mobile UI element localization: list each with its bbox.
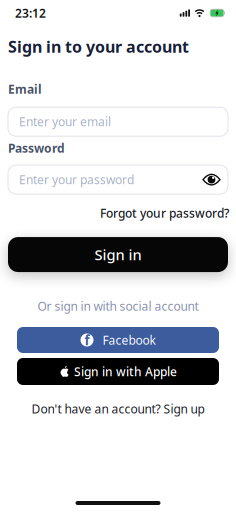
staticText: Or sign in with social account <box>37 298 198 314</box>
button[interactable]: Enter your password <box>8 165 228 194</box>
button[interactable]: Forgot your password? <box>100 205 229 221</box>
staticText: Forgot your password? <box>100 205 229 221</box>
staticText: 23:12 <box>15 5 46 21</box>
staticText: Sign in to your account <box>8 36 189 57</box>
staticText: Password <box>8 140 65 156</box>
button[interactable]: Sign in with Apple <box>17 358 219 385</box>
button[interactable]: Don't have an account? Sign up <box>31 401 204 417</box>
staticText: Enter your email <box>19 114 111 130</box>
staticText: Facebook <box>102 332 155 348</box>
staticText: Enter your password <box>19 172 134 188</box>
staticText: Email <box>8 81 42 97</box>
staticText: Don't have an account? Sign up <box>31 401 204 417</box>
staticText: Sign in with Apple <box>74 363 177 379</box>
button[interactable]: Enter your email <box>8 107 228 136</box>
button[interactable]: f <box>17 327 219 353</box>
button[interactable]: Show password <box>202 172 228 187</box>
staticText: f <box>84 331 89 349</box>
button[interactable]: Sign in <box>8 237 228 272</box>
staticText: Sign in <box>94 245 141 264</box>
